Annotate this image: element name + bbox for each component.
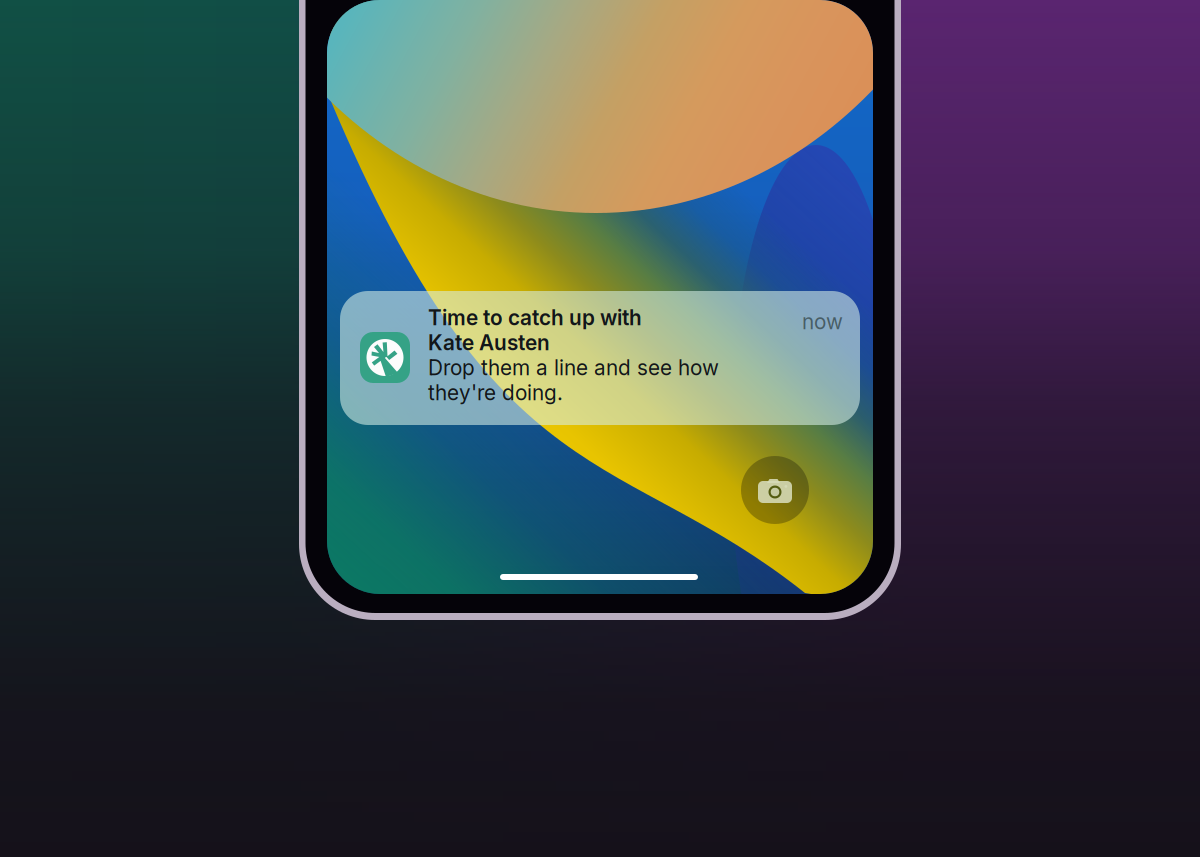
- staticText: Drop them a line and see how: [428, 355, 719, 380]
- staticText: they're doing.: [428, 380, 563, 405]
- staticText: Time to catch up with: [428, 305, 642, 330]
- staticText: now: [802, 309, 843, 334]
- button[interactable]: Time to catch up with: [340, 291, 860, 425]
- staticText: Kate Austen: [428, 330, 550, 355]
- button[interactable]: Camera: [741, 456, 809, 524]
